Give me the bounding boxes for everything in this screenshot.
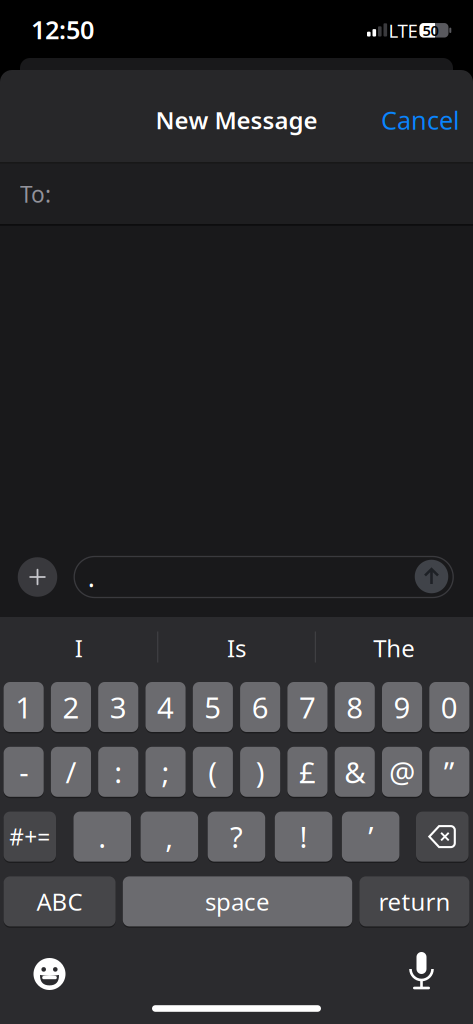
- button[interactable]: £: [287, 746, 327, 798]
- staticText: I: [75, 632, 83, 664]
- button[interactable]: 5: [193, 681, 233, 733]
- staticText: 1: [15, 687, 32, 726]
- staticText: 50: [422, 21, 438, 40]
- button[interactable]: .: [74, 556, 453, 597]
- staticText: ,: [165, 817, 173, 856]
- staticText: space: [205, 885, 270, 917]
- button[interactable]: [408, 952, 434, 992]
- button[interactable]: The: [324, 625, 464, 671]
- staticText: #+=: [9, 821, 50, 852]
- button[interactable]: [416, 811, 469, 863]
- button[interactable]: .: [73, 811, 131, 863]
- staticText: LTE: [388, 18, 417, 43]
- staticText: £: [299, 752, 316, 791]
- button[interactable]: 9: [382, 681, 422, 733]
- staticText: ): [256, 752, 265, 791]
- button[interactable]: @: [382, 746, 422, 798]
- button[interactable]: [18, 557, 57, 597]
- staticText: 6: [252, 687, 269, 726]
- button[interactable]: Is: [166, 625, 306, 671]
- staticText: ABC: [37, 885, 83, 917]
- staticText: 12:50: [31, 13, 94, 46]
- button[interactable]: ”: [429, 746, 469, 798]
- button[interactable]: ABC: [4, 875, 116, 927]
- staticText: .: [98, 817, 106, 856]
- button[interactable]: space: [123, 875, 352, 927]
- button[interactable]: ,: [141, 811, 198, 863]
- staticText: Cancel: [381, 103, 460, 137]
- button[interactable]: ’: [342, 811, 399, 863]
- staticText: 2: [62, 687, 79, 726]
- staticText: To:: [20, 179, 51, 209]
- staticText: .: [88, 559, 95, 595]
- staticText: ;: [162, 752, 170, 791]
- button[interactable]: 0: [429, 681, 469, 733]
- staticText: ”: [444, 752, 455, 791]
- staticText: @: [389, 752, 415, 791]
- staticText: Is: [227, 632, 246, 664]
- staticText: 4: [157, 687, 174, 726]
- button[interactable]: I: [9, 625, 149, 671]
- staticText: 5: [204, 687, 221, 726]
- button[interactable]: &: [335, 746, 375, 798]
- button[interactable]: ?: [208, 811, 265, 863]
- button[interactable]: Cancel: [381, 103, 460, 137]
- button[interactable]: 4: [145, 681, 186, 733]
- button[interactable]: :: [98, 746, 138, 798]
- button[interactable]: -: [4, 746, 44, 798]
- button[interactable]: #+=: [4, 811, 56, 863]
- button[interactable]: 2: [51, 681, 91, 733]
- staticText: :: [114, 752, 122, 791]
- staticText: return: [378, 885, 450, 917]
- button[interactable]: 6: [240, 681, 280, 733]
- button[interactable]: To:: [0, 164, 473, 224]
- staticText: 7: [299, 687, 316, 726]
- staticText: New Message: [155, 104, 317, 136]
- staticText: /: [65, 752, 76, 791]
- button[interactable]: (: [193, 746, 233, 798]
- button[interactable]: ;: [145, 746, 186, 798]
- staticText: The: [373, 632, 415, 664]
- button[interactable]: ): [240, 746, 280, 798]
- button[interactable]: /: [51, 746, 91, 798]
- staticText: -: [19, 752, 28, 791]
- staticText: 8: [346, 687, 363, 726]
- button[interactable]: [32, 957, 66, 991]
- button[interactable]: 8: [335, 681, 375, 733]
- button[interactable]: return: [359, 875, 469, 927]
- button[interactable]: 7: [287, 681, 327, 733]
- button[interactable]: 1: [4, 681, 44, 733]
- staticText: !: [300, 817, 308, 856]
- staticText: 3: [110, 687, 127, 726]
- button[interactable]: !: [275, 811, 332, 863]
- staticText: ?: [230, 817, 243, 856]
- staticText: &: [344, 752, 365, 791]
- button[interactable]: 3: [98, 681, 138, 733]
- staticText: ’: [368, 817, 373, 856]
- button[interactable]: [415, 560, 448, 593]
- staticText: 0: [441, 687, 458, 726]
- staticText: 9: [394, 687, 411, 726]
- staticText: (: [208, 752, 217, 791]
